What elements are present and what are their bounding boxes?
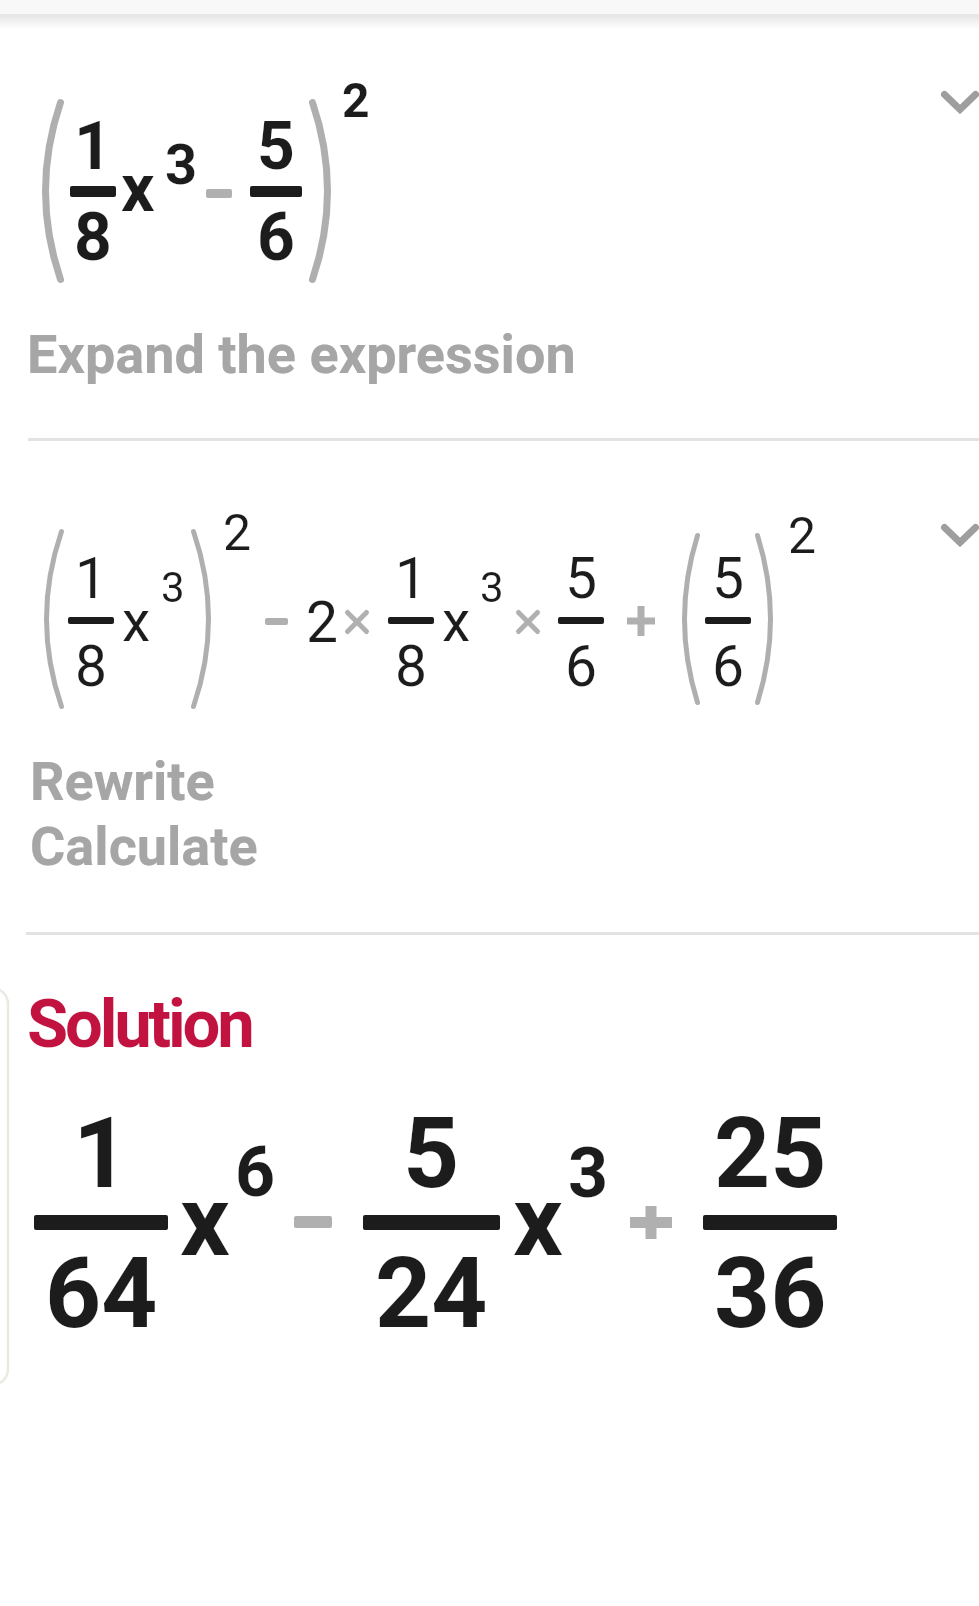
staticText: x: [180, 1164, 230, 1279]
staticText: 1: [73, 1096, 130, 1211]
staticText: x: [122, 588, 151, 655]
staticText: 2: [788, 507, 817, 566]
staticText: 36: [714, 1236, 827, 1351]
staticText: 3: [480, 563, 504, 612]
staticText: 6: [235, 1131, 276, 1213]
staticText: x: [442, 588, 471, 655]
staticText: 3: [161, 563, 185, 612]
staticText: 5: [565, 545, 598, 612]
staticText: 1: [75, 545, 108, 612]
staticText: 64: [45, 1236, 158, 1351]
staticText: 5: [403, 1096, 460, 1211]
staticText: 2: [342, 72, 370, 128]
staticText: x: [121, 150, 155, 227]
staticText: 1: [395, 545, 428, 612]
button[interactable]: [0, 441, 979, 931]
staticText: 25: [714, 1096, 827, 1211]
staticText: 8: [74, 199, 112, 276]
staticText: 2: [223, 504, 252, 563]
staticText: 6: [565, 633, 598, 700]
staticText: 2: [306, 589, 339, 656]
button[interactable]: [0, 29, 979, 438]
staticText: 24: [375, 1236, 488, 1351]
staticText: Expand the expression: [27, 323, 576, 386]
staticText: 8: [75, 633, 108, 700]
button[interactable]: [930, 72, 979, 132]
button[interactable]: [0, 936, 979, 1416]
staticText: 8: [395, 633, 428, 700]
staticText: 1: [74, 108, 112, 185]
staticText: 6: [257, 199, 295, 276]
staticText: 3: [165, 132, 198, 198]
staticText: 5: [712, 545, 745, 612]
staticText: Rewrite: [30, 750, 215, 813]
staticText: Solution: [27, 985, 252, 1064]
staticText: 5: [257, 108, 295, 185]
staticText: 3: [568, 1132, 609, 1214]
staticText: 6: [712, 633, 745, 700]
button[interactable]: [930, 505, 979, 565]
staticText: Calculate: [30, 815, 258, 878]
staticText: x: [513, 1164, 563, 1279]
